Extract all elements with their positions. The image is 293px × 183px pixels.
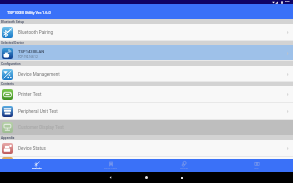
- staticText: TSP143IIILAN: [18, 49, 45, 54]
- button[interactable]: Printer Test: [0, 86, 293, 103]
- button[interactable]: Peripheral Unit Test: [0, 103, 293, 120]
- button[interactable]: Recents: [176, 172, 188, 183]
- button[interactable]: Help: [220, 159, 293, 172]
- staticText: Appendix: [1, 136, 15, 140]
- button[interactable]: Home: [140, 172, 152, 183]
- staticText: Selected Device: [1, 41, 24, 45]
- button[interactable]: Device Lights: [74, 159, 147, 172]
- button[interactable]: Settings: [147, 159, 220, 172]
- button[interactable]: Bluetooth Pairing: [0, 24, 293, 41]
- button[interactable]: TSP143IIILAN: [0, 45, 293, 61]
- staticText: Bluetooth Setup: [1, 20, 25, 24]
- staticText: 9:41: [285, 0, 290, 3]
- button[interactable]: Device Management: [0, 66, 293, 82]
- staticText: Device Status: [18, 146, 46, 151]
- staticText: Configuration: [1, 62, 21, 66]
- button[interactable]: Back: [104, 172, 116, 183]
- button[interactable]: Bluetooth: [0, 159, 74, 172]
- button[interactable]: Customer Display Test: [0, 120, 293, 135]
- staticText: Bluetooth: [32, 167, 42, 170]
- staticText: Bluetooth Pairing: [18, 30, 54, 35]
- staticText: Contents: [1, 82, 14, 86]
- staticText: TCP:192.168.1.2: [18, 55, 38, 58]
- button[interactable]: Device Status: [0, 140, 293, 157]
- staticText: Customer Display Test: [18, 125, 64, 130]
- staticText: Peripheral Unit Test: [18, 109, 58, 114]
- staticText: Device Management: [18, 72, 60, 77]
- staticText: Help: [254, 167, 259, 170]
- staticText: Printer Test: [18, 92, 42, 97]
- staticText: Settings: [180, 167, 188, 170]
- staticText: Device Lights: [104, 167, 118, 170]
- staticText: TSP100III Utility Ver.1.6.0: [7, 10, 51, 15]
